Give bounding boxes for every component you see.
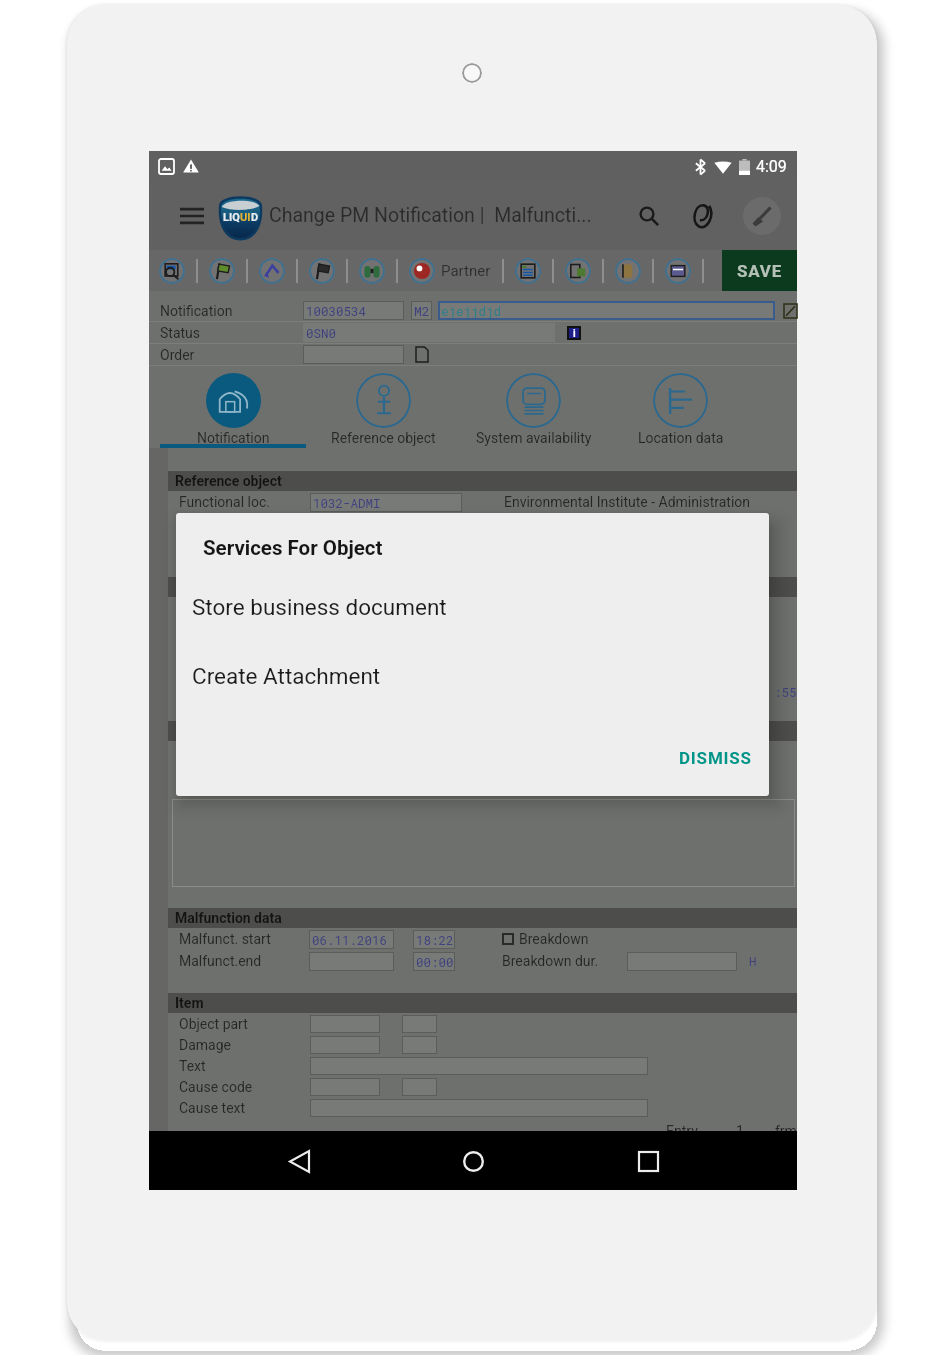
button[interactable]: Recent apps	[623, 1136, 673, 1186]
staticText: :55	[774, 684, 797, 700]
staticText: Notification	[160, 303, 303, 319]
button[interactable]: Toolbar action	[515, 258, 541, 284]
staticText: Item	[175, 995, 204, 1011]
staticText: M2	[414, 302, 430, 319]
staticText: 1	[736, 1123, 744, 1139]
staticText: Order	[160, 347, 303, 363]
staticText: DISMISS	[679, 748, 752, 768]
button[interactable]: Toolbar action	[665, 258, 691, 284]
staticText: Partner	[441, 262, 491, 280]
button[interactable]: Personalize	[743, 197, 781, 235]
staticText: Malfunct. start	[179, 931, 309, 947]
staticText: Change PM Notification | Malfuncti...	[269, 204, 631, 227]
button[interactable]: Back	[274, 1136, 324, 1186]
staticText: H	[749, 953, 757, 969]
button[interactable]: System availability	[460, 369, 607, 448]
button[interactable]: DISMISS	[667, 742, 764, 774]
staticText: Breakdown dur.	[502, 953, 599, 969]
staticText: Malfunct.end	[179, 953, 309, 969]
staticText: Cause code	[179, 1079, 310, 1095]
staticText: Create Attachment	[192, 663, 381, 689]
button[interactable]: Location data	[607, 369, 754, 448]
staticText: System availability	[476, 430, 592, 446]
staticText: D	[251, 211, 259, 224]
button[interactable]: Toolbar action	[359, 258, 385, 284]
button[interactable]: Toolbar action	[565, 258, 591, 284]
staticText: Status	[160, 325, 303, 341]
button[interactable]: Toolbar action	[409, 258, 435, 284]
staticText: 4:09	[756, 157, 787, 176]
staticText: 0SN0	[306, 325, 337, 341]
staticText: Notification	[197, 430, 270, 446]
staticText: Object part	[179, 1016, 310, 1032]
staticText: UI	[240, 211, 251, 224]
button[interactable]: Toolbar action	[409, 258, 491, 284]
staticText: Cause text	[179, 1100, 310, 1116]
staticText: Location data	[638, 430, 724, 446]
button[interactable]: Store business document	[176, 585, 769, 629]
button[interactable]: Toolbar action	[159, 258, 185, 284]
button[interactable]: Toolbar action	[309, 258, 335, 284]
staticText: Reference object	[175, 473, 282, 489]
staticText: Entry	[666, 1123, 698, 1139]
button[interactable]: Home	[448, 1136, 498, 1186]
staticText: Store business document	[192, 594, 447, 620]
staticText: SAVE	[737, 261, 783, 281]
button[interactable]: Search	[631, 198, 667, 234]
staticText: Services For Object	[203, 536, 383, 560]
staticText: Breakdown	[519, 931, 589, 947]
staticText: Malfunction data	[175, 910, 282, 926]
staticText: Environmental Institute - Administration	[504, 494, 751, 510]
button[interactable]: Reference object	[306, 369, 460, 448]
button[interactable]: Notification	[160, 369, 306, 448]
staticText: 10030534	[306, 303, 367, 319]
staticText: frm	[775, 1123, 797, 1139]
button[interactable]: Toolbar action	[209, 258, 235, 284]
button[interactable]: Toolbar action	[615, 258, 641, 284]
staticText: 18:22	[416, 932, 454, 948]
staticText: Functional loc.	[179, 494, 310, 510]
staticText: i	[573, 328, 576, 338]
staticText: 1032-ADMI	[313, 495, 381, 511]
staticText: 06.11.2016	[312, 932, 388, 948]
button[interactable]: Create Attachment	[176, 654, 769, 698]
staticText: ejejjdjd	[441, 303, 502, 319]
staticText: 00:00	[416, 954, 454, 970]
button[interactable]: Menu	[175, 199, 209, 233]
staticText: Reference object	[331, 430, 436, 446]
button[interactable]: Attachment	[683, 198, 719, 234]
button[interactable]: Toolbar action	[259, 258, 285, 284]
staticText: Damage	[179, 1037, 310, 1053]
staticText: LIQ	[223, 211, 240, 224]
button[interactable]: SAVE	[722, 250, 797, 291]
staticText: Text	[179, 1058, 310, 1074]
